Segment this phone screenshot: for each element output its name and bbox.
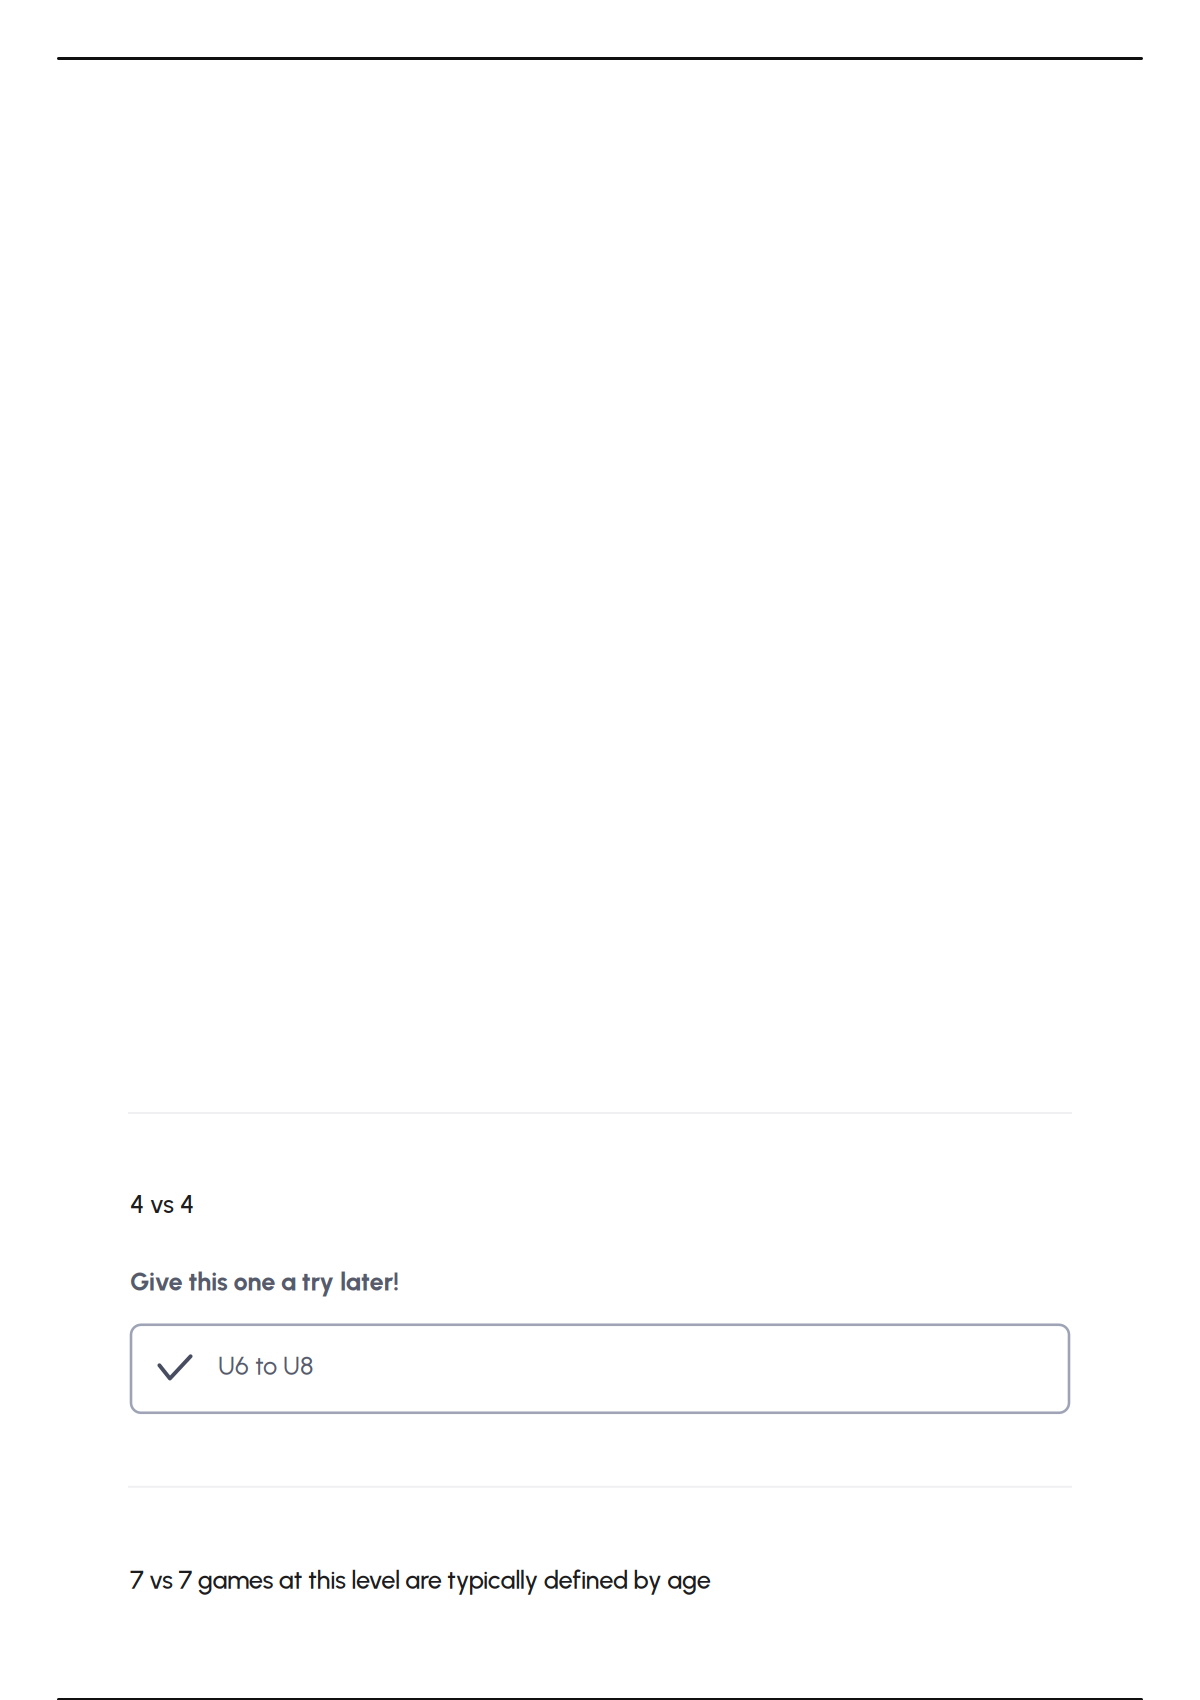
button[interactable]: U6 to U8: [131, 1325, 1069, 1413]
staticText: U6 to U8: [218, 1351, 313, 1381]
staticText: 4 vs 4: [130, 1189, 194, 1219]
staticText: Give this one a try later!: [130, 1266, 399, 1297]
staticText: 7 vs 7 games at this level are typically…: [130, 1565, 711, 1595]
